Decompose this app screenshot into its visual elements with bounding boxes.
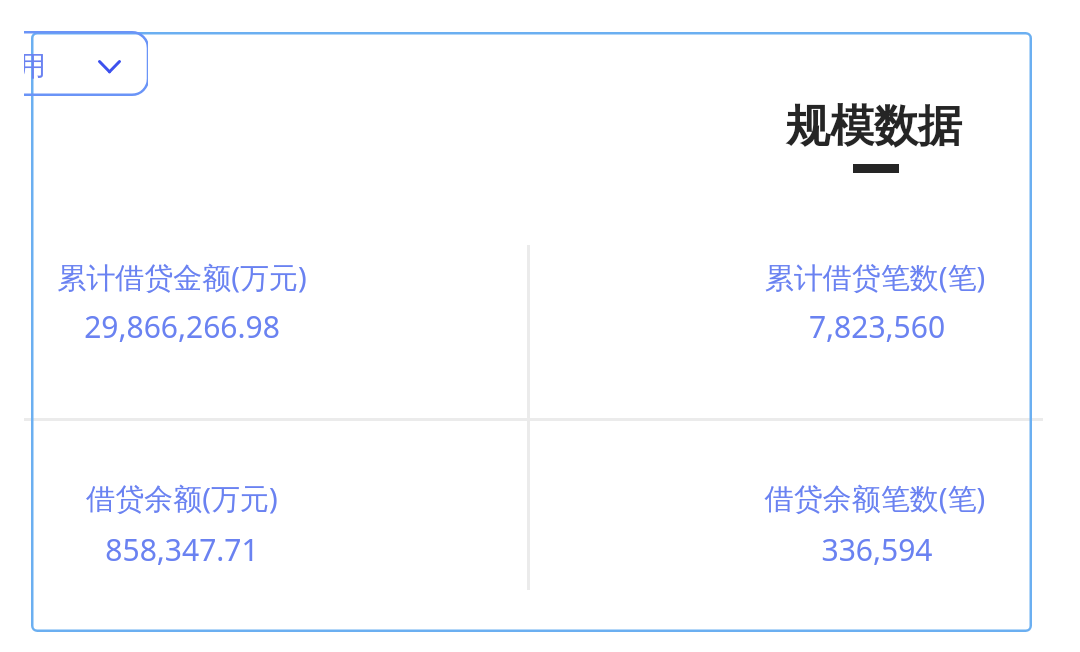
button[interactable]: Select dimension, 用: [24, 31, 148, 96]
staticText: 规模数据: [674, 99, 1074, 169]
staticText: 336,594: [677, 529, 1077, 577]
staticText: 借贷余额笔数(笔): [675, 478, 1075, 524]
staticText: 累计借贷金额(万元): [0, 257, 382, 303]
staticText: 29,866,266.98: [0, 306, 382, 354]
staticText: 858,347.71: [0, 529, 382, 577]
staticText: 借贷余额(万元): [0, 478, 382, 524]
staticText: 用: [24, 49, 73, 92]
staticText: 7,823,560: [677, 306, 1077, 354]
staticText: 累计借贷笔数(笔): [675, 257, 1075, 303]
